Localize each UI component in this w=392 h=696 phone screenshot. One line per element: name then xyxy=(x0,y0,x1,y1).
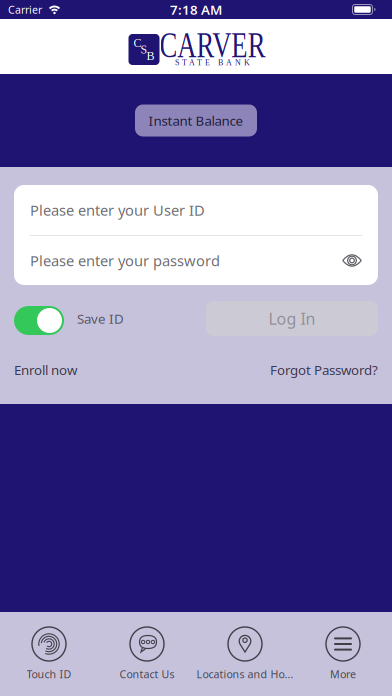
staticText: C xyxy=(133,36,141,50)
button[interactable]: Save ID xyxy=(14,304,124,333)
staticText: Contact Us xyxy=(119,667,174,681)
staticText: Enroll now xyxy=(14,361,77,379)
staticText: Save ID xyxy=(77,310,124,327)
button[interactable]: Locations and Ho... xyxy=(196,626,294,681)
staticText: Forgot Password? xyxy=(270,361,378,379)
staticText: Touch ID xyxy=(26,667,71,681)
staticText: Log In xyxy=(268,308,315,329)
staticText: More xyxy=(330,667,356,681)
staticText: Please enter your password xyxy=(30,251,220,270)
button[interactable]: Contact Us xyxy=(98,626,196,681)
staticText: Locations and Ho... xyxy=(196,667,293,681)
button[interactable]: Log In xyxy=(206,301,378,336)
staticText: 7:18 AM xyxy=(170,1,222,18)
button[interactable]: More xyxy=(294,626,392,681)
button[interactable]: Touch ID xyxy=(0,626,98,681)
staticText: STATE BANK xyxy=(175,58,250,67)
button[interactable]: Show password xyxy=(342,254,362,267)
button[interactable]: Enroll now xyxy=(14,361,77,379)
staticText: B xyxy=(146,49,154,63)
staticText: S xyxy=(140,43,147,56)
button[interactable]: Forgot Password? xyxy=(270,361,378,379)
staticText: Instant Balance xyxy=(148,112,243,129)
button[interactable]: Instant Balance xyxy=(135,104,257,136)
staticText: CARVER xyxy=(141,25,284,65)
staticText: Carrier xyxy=(8,2,42,17)
staticText: Please enter your User ID xyxy=(30,200,205,220)
